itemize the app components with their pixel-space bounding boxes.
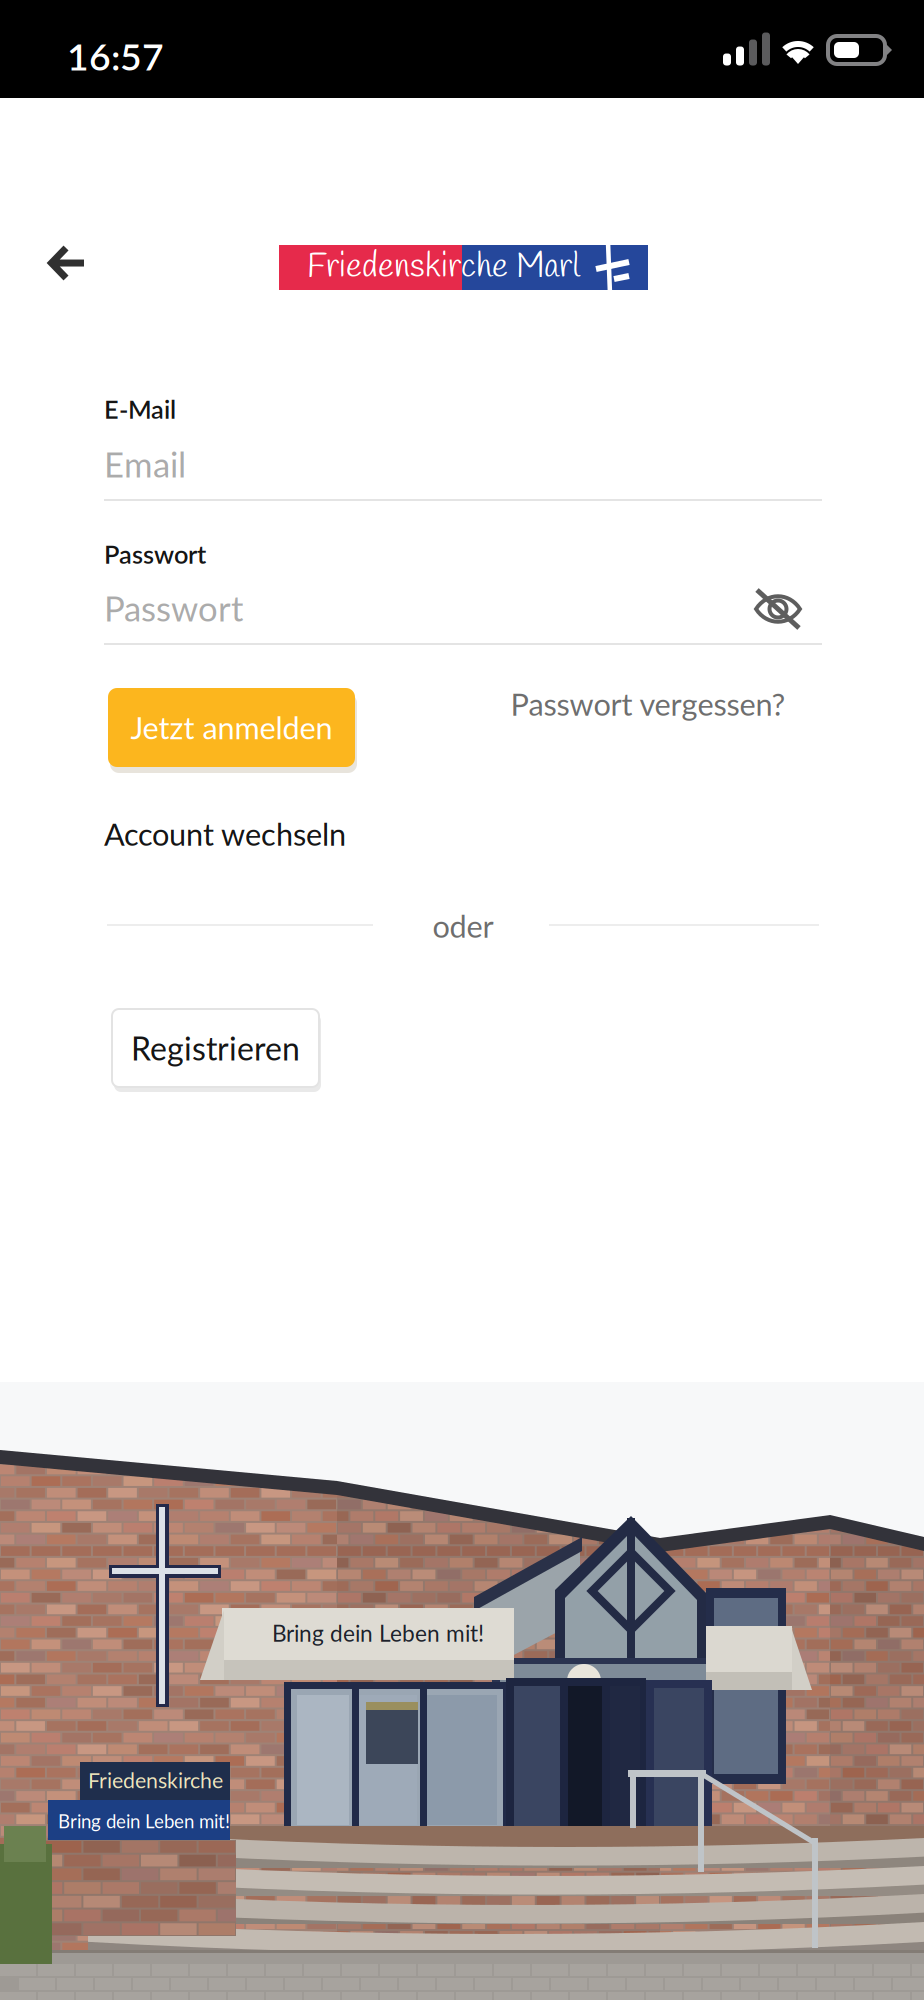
- button[interactable]: Jetzt anmelden: [108, 688, 355, 767]
- staticText: 16:57: [67, 34, 164, 78]
- button[interactable]: Account wechseln: [104, 810, 524, 858]
- staticText: Friedenskirche: [88, 1767, 223, 1793]
- staticText: oder: [432, 908, 493, 944]
- button[interactable]: Registrieren: [112, 1009, 319, 1087]
- button[interactable]: Passwort vergessen?: [480, 678, 816, 730]
- staticText: Passwort: [104, 587, 243, 629]
- staticText: Bring dein Leben mit!: [58, 1810, 230, 1832]
- button[interactable]: Passwort anzeigen: [733, 568, 823, 650]
- staticText: Account wechseln: [104, 816, 346, 852]
- staticText: Email: [104, 443, 186, 485]
- staticText: Registrieren: [131, 1029, 300, 1067]
- staticText: Passwort vergessen?: [510, 686, 785, 722]
- staticText: E-Mail: [104, 394, 176, 424]
- staticText: Passwort: [104, 539, 206, 569]
- button[interactable]: Zurück: [18, 214, 116, 312]
- staticText: Friedenskirche Marl: [307, 245, 580, 290]
- staticText: Bring dein Leben mit!: [272, 1619, 484, 1647]
- staticText: Jetzt anmelden: [130, 709, 332, 746]
